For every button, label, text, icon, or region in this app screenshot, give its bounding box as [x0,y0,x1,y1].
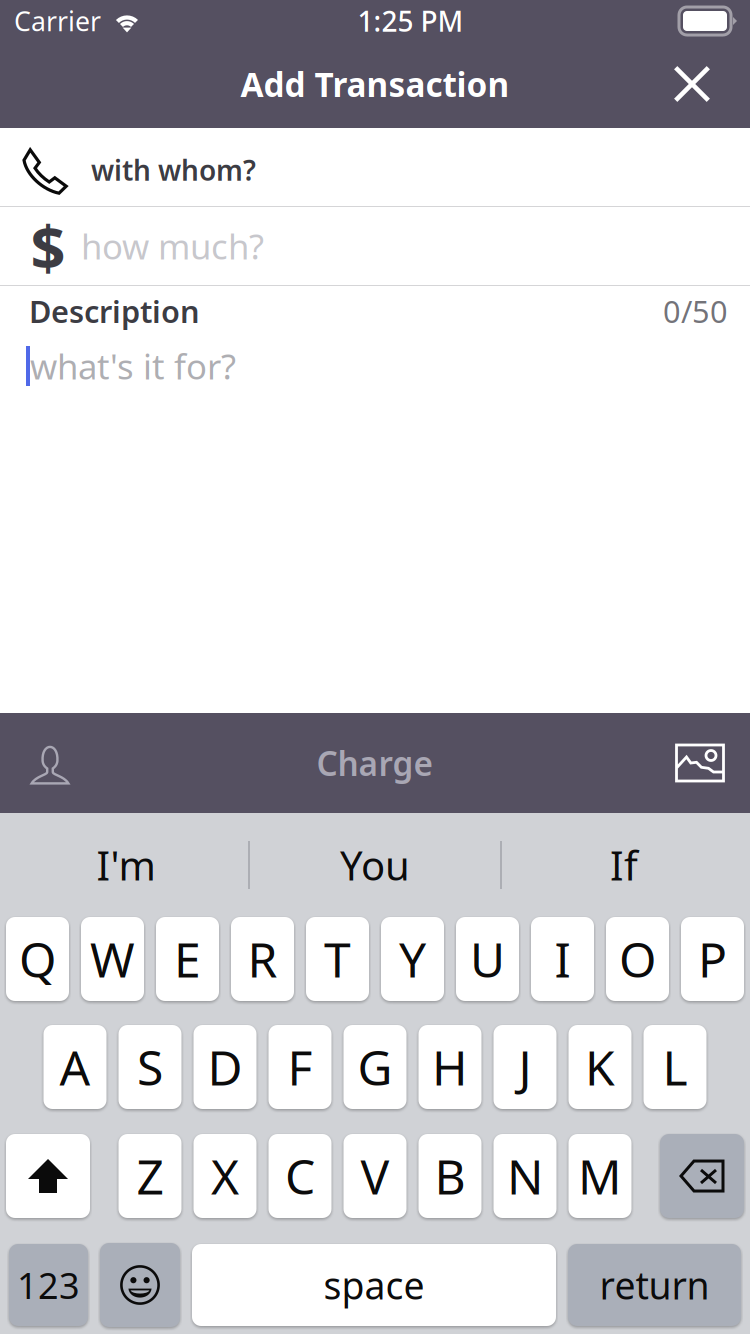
staticText: 0/50 [663,291,728,331]
button[interactable]: I'm [4,813,248,917]
button[interactable]: Q [6,917,69,1001]
staticText: If [610,838,638,891]
button[interactable]: A [43,1025,106,1109]
button[interactable]: H [418,1025,481,1109]
button[interactable]: S [118,1025,181,1109]
button[interactable]: R [231,917,294,1001]
staticText: You [340,838,410,891]
button[interactable]: F [268,1025,331,1109]
staticText: B [434,1144,465,1208]
button[interactable]: Close [650,41,734,127]
staticText: Add Transaction [240,62,509,106]
staticText: $ [30,205,65,287]
staticText: H [432,1035,468,1099]
staticText: C [285,1144,315,1208]
button[interactable]: 123 [9,1244,88,1326]
staticText: Charge [316,741,433,785]
staticText: E [174,927,201,991]
button[interactable]: Emoji [100,1243,180,1327]
button[interactable]: K [568,1025,631,1109]
button[interactable]: You [250,813,500,917]
staticText: N [507,1144,543,1208]
staticText: Carrier [14,3,101,39]
staticText: A [59,1035,90,1099]
button[interactable]: L [643,1025,706,1109]
button[interactable]: G [343,1025,406,1109]
button[interactable]: Delete [660,1134,744,1218]
staticText: G [357,1035,392,1099]
button[interactable]: return [568,1244,741,1326]
staticText: W [90,927,135,991]
button[interactable]: U [456,917,519,1001]
button[interactable]: Y [381,917,444,1001]
staticText: R [247,927,277,991]
staticText: I [554,927,570,991]
button[interactable]: J [493,1025,556,1109]
button[interactable]: B [418,1134,481,1218]
button[interactable]: M [568,1134,631,1218]
staticText: L [662,1035,687,1099]
staticText: how much? [81,223,264,269]
staticText: what's it for? [30,343,236,389]
staticText: J [518,1035,531,1099]
staticText: Q [19,927,56,991]
button[interactable]: If [502,813,746,917]
button[interactable]: V [343,1134,406,1218]
button[interactable]: O [606,917,669,1001]
button[interactable]: C [268,1134,331,1218]
button[interactable]: Z [118,1134,181,1218]
staticText: U [470,927,505,991]
staticText: 123 [17,1261,80,1309]
button[interactable]: E [156,917,219,1001]
staticText: return [599,1260,709,1310]
button[interactable]: X [193,1134,256,1218]
staticText: Z [136,1144,163,1208]
button[interactable]: Shift [6,1134,90,1218]
button[interactable]: Attach photo [650,713,750,813]
staticText: D [207,1035,242,1099]
staticText: with whom? [91,151,256,189]
button[interactable]: Choose contact [0,713,100,813]
staticText: X [211,1144,239,1208]
staticText: I'm [96,838,155,891]
staticText: M [578,1144,622,1208]
button[interactable]: space [192,1244,556,1326]
staticText: K [585,1035,615,1099]
button[interactable]: N [493,1134,556,1218]
button[interactable]: D [193,1025,256,1109]
staticText: T [324,927,351,991]
button[interactable]: I [531,917,594,1001]
button[interactable]: P [681,917,744,1001]
staticText: P [698,927,727,991]
staticText: space [323,1260,424,1310]
staticText: S [137,1035,163,1099]
staticText: O [619,927,656,991]
button[interactable]: W [81,917,144,1001]
staticText: Y [399,927,426,991]
staticText: 1:25 PM [357,2,463,40]
staticText: Description [29,291,200,331]
staticText: V [360,1144,389,1208]
button[interactable]: T [306,917,369,1001]
staticText: F [287,1035,312,1099]
